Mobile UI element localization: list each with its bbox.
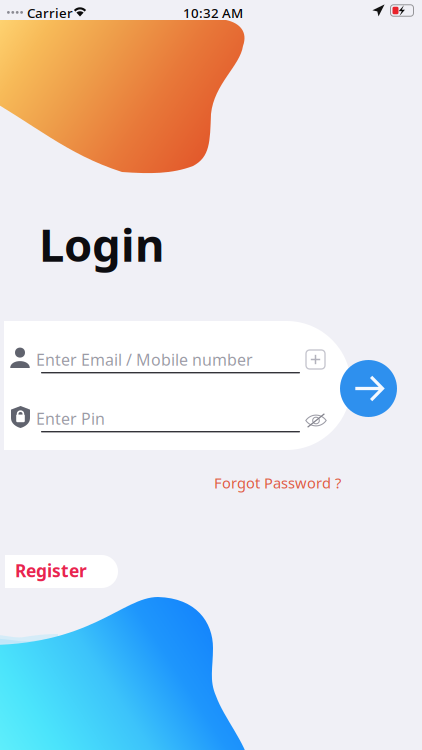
staticText: Enter Pin	[36, 408, 105, 429]
button[interactable]: Sign in	[340, 360, 397, 417]
button[interactable]: Add account	[306, 350, 325, 369]
staticText: Enter Email / Mobile number	[36, 349, 253, 370]
staticText: Register	[15, 559, 87, 582]
button[interactable]: Forgot Password ?	[208, 469, 347, 496]
staticText: Forgot Password ?	[214, 473, 341, 492]
staticText: 10:32 AM	[183, 4, 243, 22]
button[interactable]: Register	[5, 555, 118, 588]
button[interactable]: Show pin	[305, 413, 327, 428]
staticText: Login	[39, 214, 164, 274]
staticText: Carrier	[27, 4, 73, 22]
